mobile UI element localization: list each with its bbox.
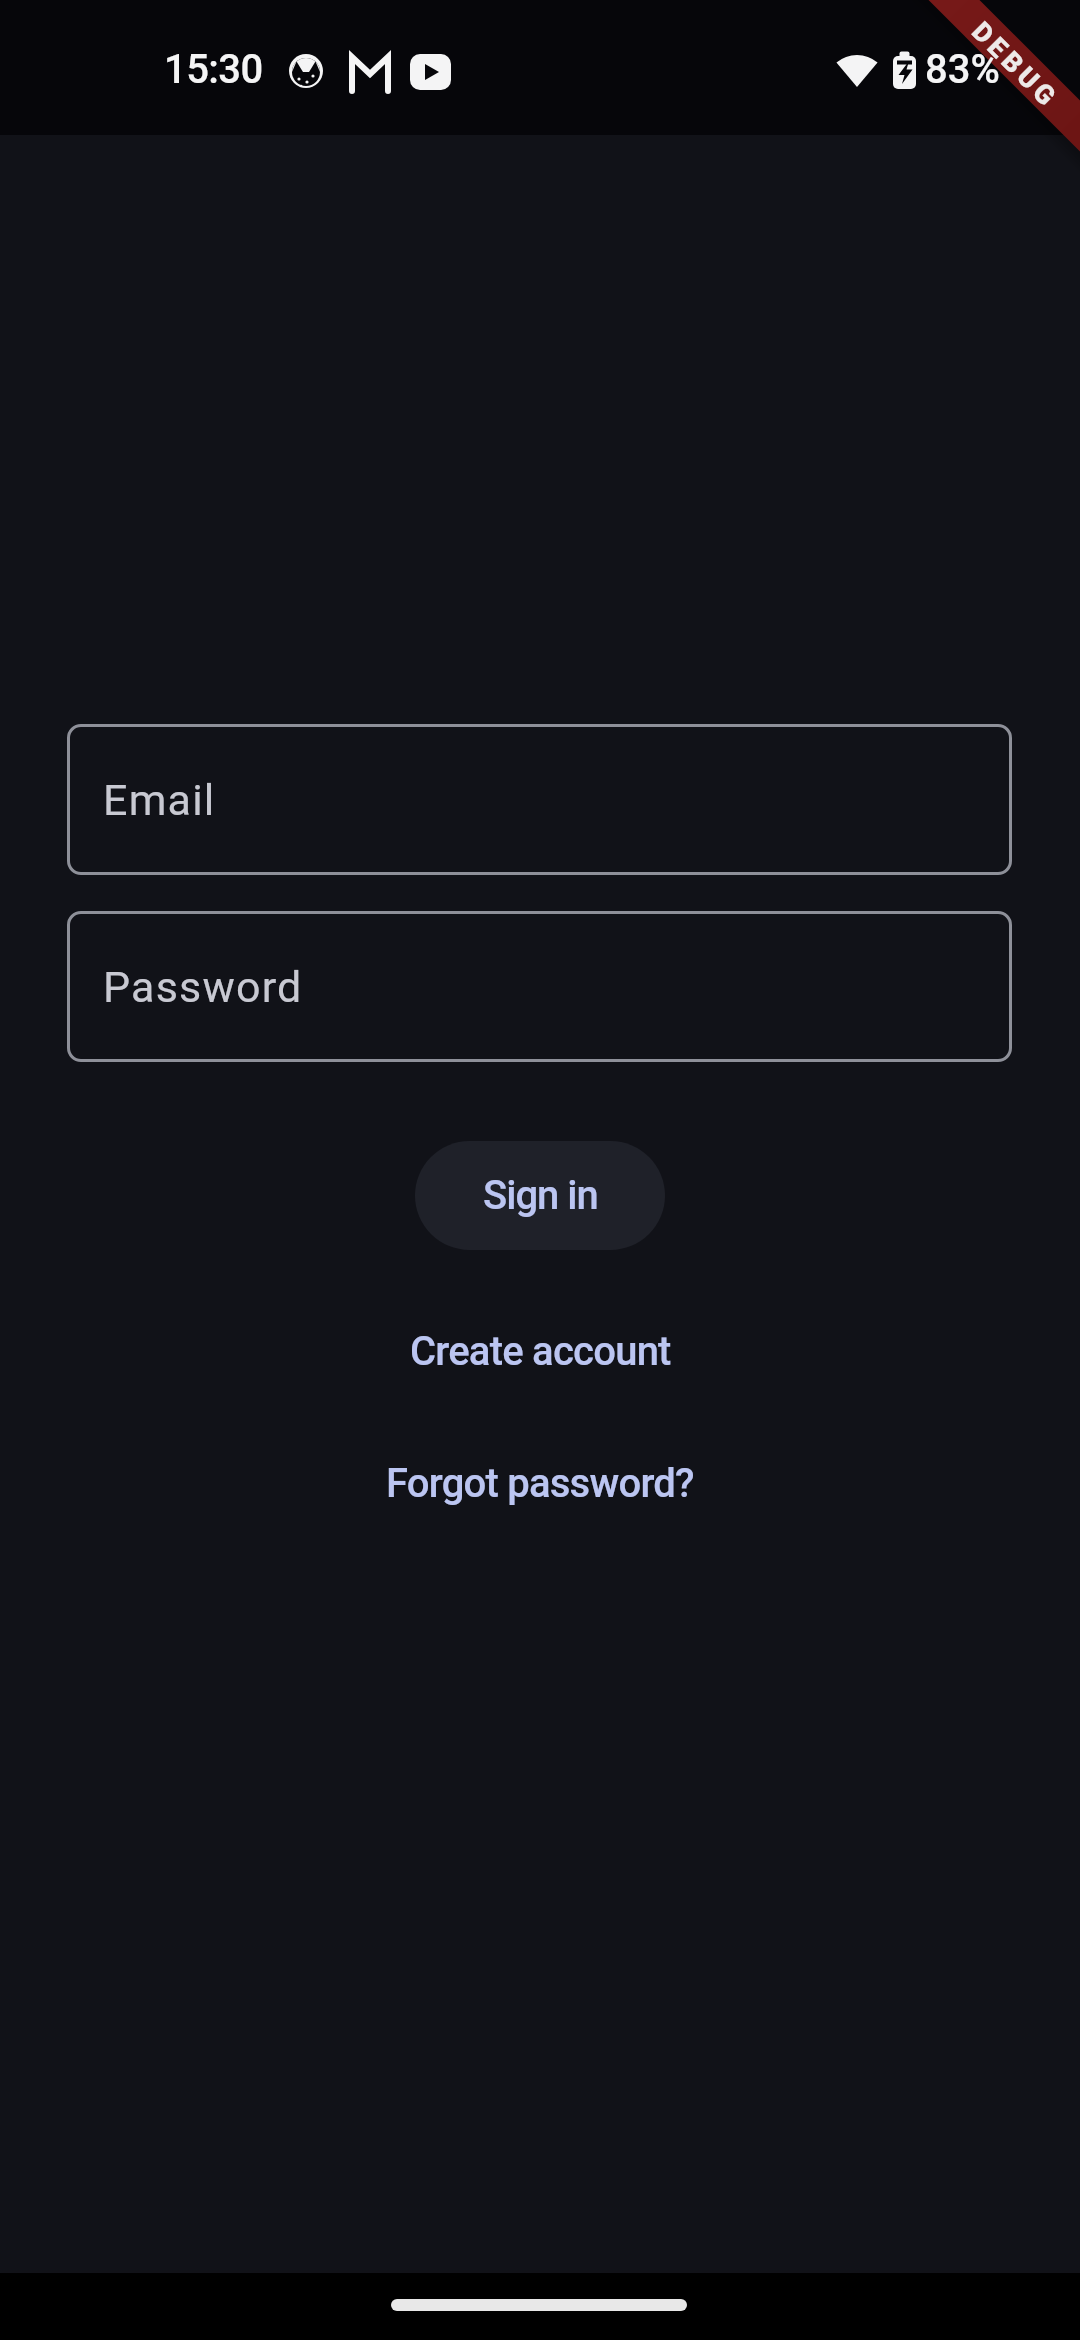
staticText: 83% xyxy=(925,46,1000,93)
staticText: Forgot password? xyxy=(386,1460,694,1507)
staticText: Password xyxy=(103,962,303,1012)
button[interactable]: Sign in xyxy=(415,1141,665,1250)
staticText: DEBUG xyxy=(965,16,1065,115)
staticText: Sign in xyxy=(483,1172,598,1219)
button[interactable]: Password xyxy=(67,911,1012,1062)
staticText: 15:30 xyxy=(164,46,263,93)
button[interactable]: Forgot password? xyxy=(374,1454,706,1513)
button[interactable]: Create account xyxy=(398,1322,683,1381)
staticText: Email xyxy=(103,775,216,825)
button[interactable]: Email xyxy=(67,724,1012,875)
staticText: Create account xyxy=(410,1328,671,1375)
